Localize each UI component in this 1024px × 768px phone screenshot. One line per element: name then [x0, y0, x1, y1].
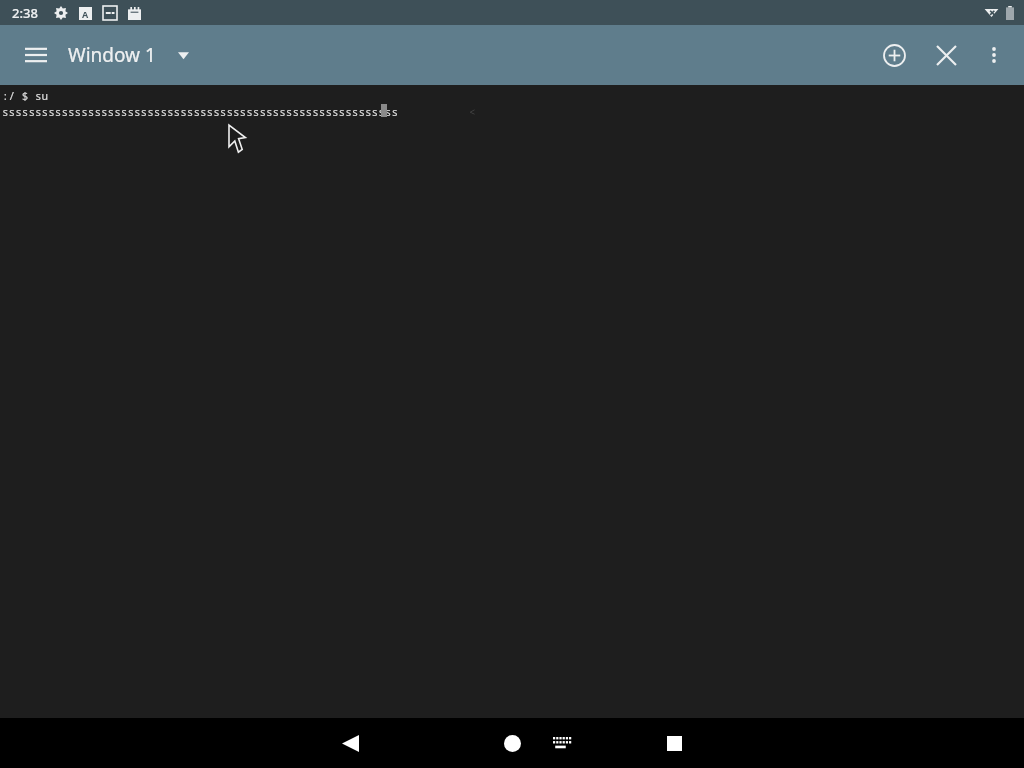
- staticText: Window 1: [68, 42, 156, 68]
- button[interactable]: Back: [326, 719, 374, 767]
- button[interactable]: Close window: [922, 31, 970, 79]
- staticText: 2:38: [12, 4, 38, 22]
- staticText: A: [82, 8, 89, 20]
- button[interactable]: Window 1: [68, 42, 196, 68]
- button[interactable]: Recent apps: [650, 719, 698, 767]
- button[interactable]: Home: [488, 719, 536, 767]
- staticText: <: [469, 104, 476, 119]
- button[interactable]: Switch keyboard: [543, 725, 579, 761]
- staticText: ssssssssssssssssssssssssssssssssssssssss…: [2, 104, 398, 119]
- button[interactable]: Menu: [14, 33, 58, 77]
- button[interactable]: New window: [870, 31, 918, 79]
- staticText: :/ $ su: [2, 88, 49, 103]
- button[interactable]: More options: [972, 33, 1016, 77]
- button[interactable]: :/ $ su: [0, 85, 1024, 718]
